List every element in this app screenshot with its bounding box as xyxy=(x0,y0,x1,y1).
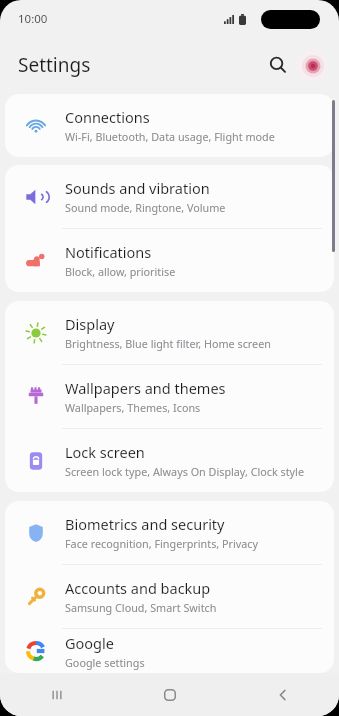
staticText: Google settings xyxy=(65,655,145,670)
staticText: Notifications xyxy=(65,242,152,262)
button[interactable]: Notifications xyxy=(5,229,334,292)
staticText: Samsung Cloud, Smart Switch xyxy=(65,600,217,615)
staticText: Biometrics and security xyxy=(65,514,225,534)
button[interactable]: Accounts and backup xyxy=(5,565,334,628)
staticText: Lock screen xyxy=(65,442,145,462)
staticText: Screen lock type, Always On Display, Clo… xyxy=(65,464,304,479)
button[interactable]: Display xyxy=(5,301,334,364)
button[interactable]: Home xyxy=(113,673,226,716)
button[interactable]: Connections xyxy=(5,94,334,157)
staticText: Face recognition, Fingerprints, Privacy xyxy=(65,536,259,551)
button[interactable]: Recents xyxy=(0,673,113,716)
button[interactable]: Wallpapers and themes xyxy=(5,365,334,428)
staticText: Block, allow, prioritise xyxy=(65,264,176,279)
button[interactable]: Google xyxy=(5,629,334,673)
button[interactable]: Sounds and vibration xyxy=(5,165,334,228)
staticText: Accounts and backup xyxy=(65,578,211,598)
staticText: Display xyxy=(65,314,115,334)
staticText: Wallpapers and themes xyxy=(65,378,226,398)
staticText: Connections xyxy=(65,107,150,127)
button[interactable]: Search xyxy=(261,48,295,82)
button[interactable]: Account xyxy=(297,50,328,81)
staticText: Brightness, Blue light filter, Home scre… xyxy=(65,336,271,351)
staticText: Settings xyxy=(18,52,91,78)
staticText: Google xyxy=(65,633,114,653)
button[interactable]: Back xyxy=(226,673,339,716)
button[interactable]: Biometrics and security xyxy=(5,501,334,564)
staticText: Wallpapers, Themes, Icons xyxy=(65,400,201,415)
staticText: Sounds and vibration xyxy=(65,178,210,198)
staticText: Sound mode, Ringtone, Volume xyxy=(65,200,226,215)
button[interactable]: Lock screen xyxy=(5,429,334,492)
staticText: 10:00 xyxy=(18,11,48,27)
staticText: Wi-Fi, Bluetooth, Data usage, Flight mod… xyxy=(65,129,275,144)
